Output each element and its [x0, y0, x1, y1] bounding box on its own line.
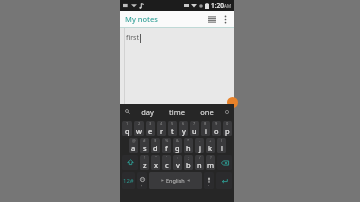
button[interactable]: ;	[184, 155, 193, 170]
staticText: 7	[193, 121, 196, 126]
staticText: 5	[171, 121, 174, 126]
button[interactable]: time	[162, 104, 192, 119]
staticText: +	[209, 138, 212, 143]
button[interactable]: Backspace	[217, 155, 232, 170]
button[interactable]: one	[192, 104, 222, 119]
staticText: z	[143, 160, 147, 170]
staticText: t	[171, 126, 174, 136]
staticText: 1	[126, 121, 129, 126]
staticText: a	[131, 143, 136, 153]
button[interactable]: $	[151, 138, 160, 153]
button[interactable]: Enter	[216, 172, 232, 189]
button[interactable]: 2	[134, 121, 144, 136]
staticText: ,	[141, 181, 143, 188]
button[interactable]: +	[206, 138, 215, 153]
button[interactable]: !	[140, 155, 149, 170]
button[interactable]: DU Recorder	[227, 97, 238, 108]
button[interactable]: Shift	[122, 155, 138, 170]
button[interactable]: (	[217, 138, 226, 153]
staticText: 0	[226, 121, 229, 126]
staticText: &	[176, 138, 179, 143]
staticText: #	[143, 138, 146, 143]
staticText: "	[155, 155, 157, 160]
staticText: English	[166, 177, 185, 184]
staticText: k	[208, 143, 213, 153]
staticText: $	[154, 138, 157, 143]
button[interactable]: 8	[201, 121, 210, 136]
staticText: day	[141, 107, 154, 117]
button[interactable]: 4	[157, 121, 166, 136]
staticText: v	[176, 160, 180, 170]
button[interactable]: Emoji	[137, 172, 147, 189]
button[interactable]: :	[173, 155, 182, 170]
staticText: h	[186, 143, 191, 153]
staticText: p	[225, 126, 230, 136]
button[interactable]: '	[162, 155, 171, 170]
button[interactable]: More options	[219, 13, 231, 25]
staticText: s	[143, 143, 147, 153]
staticText: AM	[224, 3, 231, 9]
staticText: '	[166, 155, 167, 160]
staticText: f	[165, 143, 168, 153]
staticText: x	[154, 160, 158, 170]
staticText: w	[136, 126, 142, 136]
staticText: 3	[149, 121, 152, 126]
staticText: 8	[204, 121, 207, 126]
staticText: ?	[210, 155, 212, 160]
button[interactable]: Space	[149, 172, 202, 189]
button[interactable]: day	[132, 104, 162, 119]
staticText: d	[153, 143, 158, 153]
staticText: e	[148, 126, 153, 136]
staticText: %	[165, 138, 169, 143]
staticText: *	[187, 138, 190, 143]
button[interactable]: 5	[168, 121, 177, 136]
button[interactable]: 3	[146, 121, 155, 136]
button[interactable]: 0	[223, 121, 232, 136]
button[interactable]: *	[184, 138, 193, 153]
staticText: ;	[188, 155, 190, 160]
button[interactable]: "	[151, 155, 160, 170]
staticText: -	[199, 138, 201, 143]
button[interactable]: 12#	[122, 172, 135, 189]
button[interactable]: Voice input	[204, 172, 214, 189]
staticText: 1:20	[211, 1, 224, 10]
button[interactable]: 1	[122, 121, 132, 136]
staticText: time	[169, 107, 185, 117]
button[interactable]: 9	[212, 121, 221, 136]
staticText: i	[205, 126, 207, 136]
staticText: 6	[182, 121, 185, 126]
staticText: 9	[215, 121, 218, 126]
staticText: .	[208, 181, 210, 188]
staticText: c	[165, 160, 169, 170]
button[interactable]: My notes	[125, 14, 158, 24]
button[interactable]: #	[140, 138, 149, 153]
staticText: @	[132, 138, 136, 143]
button[interactable]: 7	[190, 121, 199, 136]
staticText: g	[175, 143, 180, 153]
staticText: m	[207, 160, 215, 170]
button[interactable]: %	[162, 138, 171, 153]
button[interactable]: @	[129, 138, 138, 153]
button[interactable]: &	[173, 138, 182, 153]
button[interactable]: first	[120, 28, 234, 104]
button[interactable]: Expand suggestions	[222, 107, 231, 116]
staticText: y	[182, 126, 186, 136]
button[interactable]: Search	[123, 107, 132, 116]
button[interactable]: 6	[179, 121, 188, 136]
button[interactable]: -	[195, 138, 204, 153]
button[interactable]: List view	[205, 12, 219, 26]
button[interactable]: /	[195, 155, 204, 170]
staticText: !	[144, 155, 146, 160]
staticText: first	[126, 33, 139, 43]
button[interactable]: ?	[206, 155, 215, 170]
staticText: b	[186, 160, 191, 170]
staticText: 2	[138, 121, 141, 126]
staticText: 4	[160, 121, 163, 126]
staticText: n	[197, 160, 202, 170]
staticText: l	[221, 143, 223, 153]
staticText: q	[125, 126, 130, 136]
staticText: r	[160, 126, 164, 136]
staticText: /	[199, 155, 201, 160]
staticText: one	[200, 107, 214, 117]
staticText: o	[214, 126, 219, 136]
